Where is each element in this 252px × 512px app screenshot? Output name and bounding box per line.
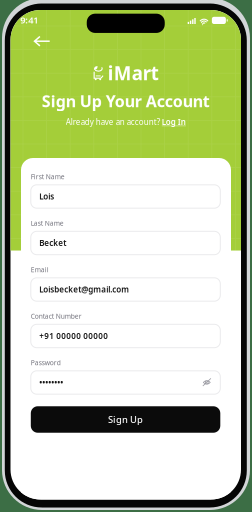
staticText: Password: [31, 358, 61, 367]
staticText: Loisbecket@gmail.com: [39, 284, 129, 295]
staticText: 9:41: [20, 14, 38, 26]
button[interactable]: Already have an account?: [66, 114, 186, 129]
button[interactable]: Back: [27, 30, 57, 52]
staticText: Sign Up: [108, 413, 143, 426]
staticText: Sign Up Your Account: [42, 90, 210, 112]
button[interactable]: Sign Up: [31, 406, 220, 433]
staticText: +91 00000 00000: [39, 331, 108, 341]
staticText: Becket: [39, 238, 66, 248]
staticText: iMart: [108, 61, 159, 85]
staticText: First Name: [31, 172, 65, 181]
staticText: Log In: [162, 116, 186, 127]
staticText: Contact Number: [31, 312, 82, 321]
staticText: Email: [31, 265, 49, 274]
staticText: Last Name: [31, 219, 64, 228]
staticText: Already have an account?: [66, 116, 160, 127]
staticText: ••••••••: [39, 377, 63, 388]
staticText: Lois: [39, 191, 54, 202]
